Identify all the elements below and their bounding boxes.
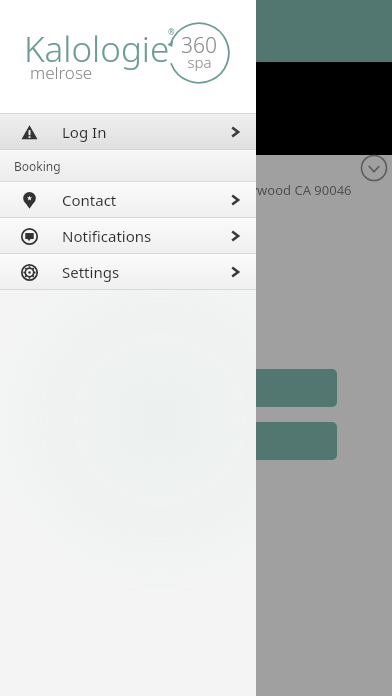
button[interactable]: Settings (0, 254, 256, 289)
staticText: spa (187, 52, 212, 72)
button[interactable]: Directions (55, 422, 337, 460)
staticText: Kalologie (24, 25, 170, 73)
staticText: Notifications (62, 226, 152, 246)
staticText: ® (168, 26, 175, 37)
staticText: Settings (62, 262, 120, 282)
button[interactable]: Log In (0, 114, 256, 149)
button[interactable]: Contact (0, 182, 256, 217)
staticText: 360 (181, 31, 217, 60)
staticText: melrose (30, 61, 93, 84)
button[interactable]: Notifications (0, 218, 256, 253)
button[interactable]: (323) 555-0148 (55, 369, 337, 407)
button[interactable]: Collapse (360, 154, 388, 182)
staticText: Contact (62, 190, 117, 210)
staticText: Booking (14, 158, 61, 174)
staticText: 1 W Hollywood CA 90046 (200, 181, 352, 199)
staticText: Log In (62, 122, 107, 142)
